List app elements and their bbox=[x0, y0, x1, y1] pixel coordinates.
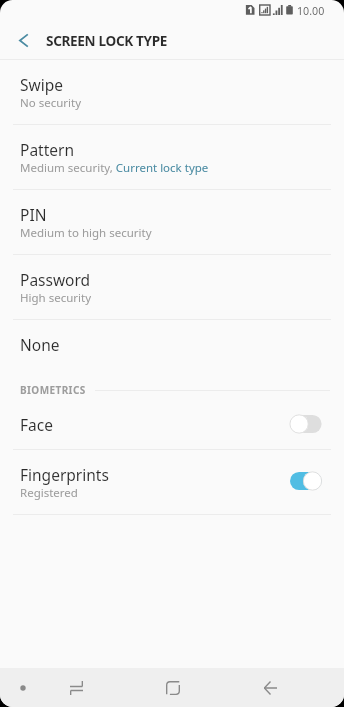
button[interactable]: PIN bbox=[0, 190, 344, 254]
staticText: Pattern bbox=[20, 139, 74, 160]
button[interactable]: None bbox=[0, 320, 344, 368]
button[interactable]: Swipe bbox=[0, 60, 344, 124]
button[interactable]: Pattern bbox=[0, 125, 344, 189]
button[interactable]: Back bbox=[251, 669, 289, 707]
staticText: Fingerprints bbox=[20, 464, 109, 485]
button[interactable]: Recents bbox=[57, 669, 95, 707]
staticText: Face bbox=[20, 414, 53, 435]
staticText: Medium security, Current lock type bbox=[20, 160, 209, 176]
staticText: BIOMETRICS bbox=[20, 383, 86, 397]
staticText: High security bbox=[20, 290, 92, 306]
button[interactable]: On bbox=[290, 471, 322, 491]
staticText: None bbox=[20, 334, 60, 355]
staticText: Swipe bbox=[20, 74, 63, 95]
staticText: No security bbox=[20, 95, 82, 111]
button[interactable]: Home bbox=[154, 669, 192, 707]
staticText: Medium to high security bbox=[20, 225, 152, 241]
staticText: SCREEN LOCK TYPE bbox=[46, 31, 168, 50]
staticText: PIN bbox=[20, 204, 47, 225]
button[interactable]: Fingerprints bbox=[0, 450, 344, 514]
button[interactable]: Off bbox=[290, 414, 322, 434]
button[interactable]: Navigate up bbox=[4, 22, 42, 59]
staticText: 10.00 bbox=[297, 4, 325, 19]
button[interactable]: Password bbox=[0, 255, 344, 319]
staticText: Password bbox=[20, 269, 91, 290]
button[interactable]: Face bbox=[0, 400, 344, 449]
staticText: Registered bbox=[20, 485, 78, 501]
